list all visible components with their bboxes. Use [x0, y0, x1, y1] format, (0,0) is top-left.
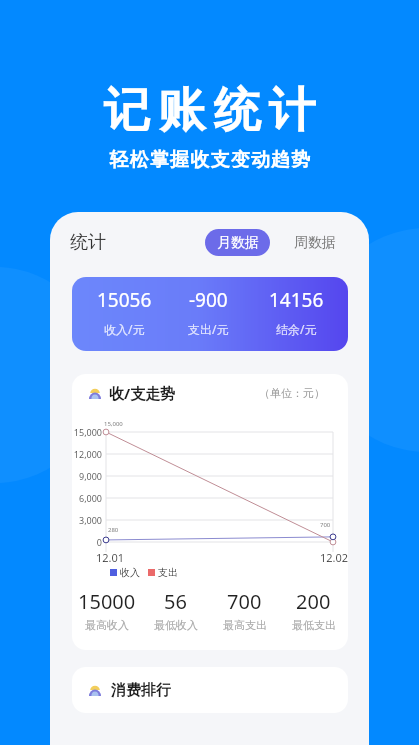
staticText: 支出 — [158, 566, 178, 579]
staticText: 15000 — [78, 588, 136, 615]
staticText: 56 — [164, 588, 187, 615]
staticText: 3,000 — [78, 514, 102, 526]
staticText: （单位：元） — [259, 386, 325, 400]
staticText: 消费排行 — [111, 681, 171, 700]
staticText: 15056 — [97, 287, 152, 313]
staticText: 最高收入 — [85, 618, 129, 632]
staticText: 统计 — [70, 231, 106, 254]
staticText: 700 — [227, 588, 262, 615]
staticText: 0 — [96, 536, 102, 548]
staticText: 12.02 — [320, 550, 348, 565]
staticText: 结余/元 — [276, 321, 317, 337]
staticText: 200 — [296, 588, 331, 615]
staticText: 12,000 — [73, 448, 102, 460]
staticText: 最高支出 — [223, 618, 267, 632]
button[interactable]: 周数据 — [282, 229, 347, 256]
staticText: 700 — [320, 521, 331, 529]
staticText: 轻松掌握收支变动趋势 — [1, 148, 419, 172]
staticText: 9,000 — [78, 470, 102, 482]
staticText: 收入/元 — [104, 321, 145, 337]
staticText: 周数据 — [294, 234, 336, 252]
staticText: -900 — [189, 287, 228, 313]
staticText: 15,000 — [104, 420, 123, 428]
staticText: 月数据 — [217, 234, 259, 252]
staticText: 收/支走势 — [109, 383, 176, 403]
staticText: 最低收入 — [154, 618, 198, 632]
staticText: 14156 — [269, 287, 324, 313]
staticText: 收入 — [120, 566, 140, 579]
staticText: 记账统计 — [4, 81, 419, 140]
staticText: 6,000 — [78, 492, 102, 504]
staticText: 12.01 — [96, 550, 125, 565]
staticText: 最低支出 — [292, 618, 336, 632]
staticText: 280 — [108, 526, 119, 534]
staticText: 支出/元 — [188, 321, 229, 337]
staticText: 15,000 — [73, 426, 102, 438]
button[interactable]: 月数据 — [205, 229, 270, 256]
